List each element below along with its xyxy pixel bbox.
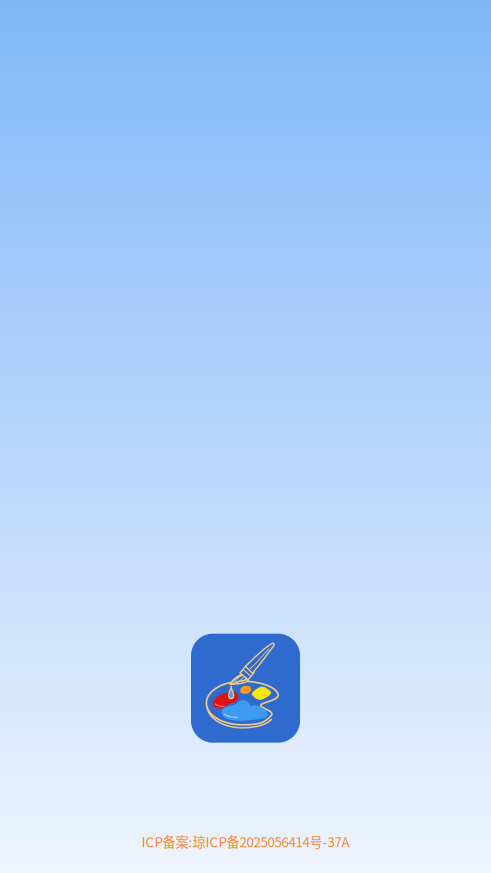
staticText: ICP备案:琼ICP备2025056414号-37A [141, 832, 349, 851]
button[interactable]: ICP备案:琼ICP备2025056414号-37A [135, 829, 355, 854]
